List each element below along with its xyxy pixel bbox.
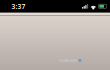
staticText: made with <box>59 57 77 63</box>
staticText: 3:37 <box>11 2 25 11</box>
